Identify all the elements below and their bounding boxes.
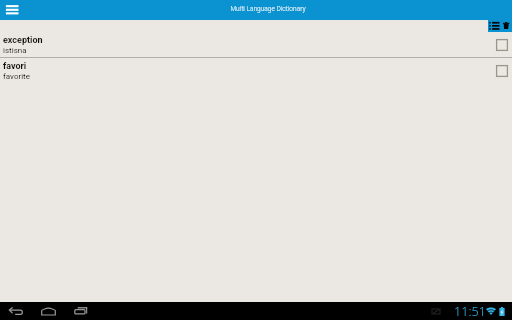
button[interactable]: View list bbox=[488, 20, 501, 32]
button[interactable]: Delete bbox=[501, 20, 512, 32]
button[interactable]: Open navigation drawer bbox=[2, 0, 22, 20]
button[interactable]: exception bbox=[0, 32, 512, 57]
button[interactable]: Select favori bbox=[496, 65, 508, 77]
staticText: Multi Language Dictionary bbox=[230, 5, 306, 13]
button[interactable]: Recent apps bbox=[64, 302, 96, 320]
button[interactable]: favori bbox=[0, 58, 512, 83]
staticText: favorite bbox=[3, 72, 30, 81]
button[interactable]: Select exception bbox=[496, 39, 508, 51]
staticText: istisna bbox=[3, 46, 27, 55]
staticText: 11:51 bbox=[454, 303, 486, 320]
button[interactable]: Home bbox=[32, 302, 64, 320]
button[interactable]: Back bbox=[0, 302, 32, 320]
staticText: favori bbox=[3, 61, 27, 72]
staticText: exception bbox=[3, 35, 43, 46]
